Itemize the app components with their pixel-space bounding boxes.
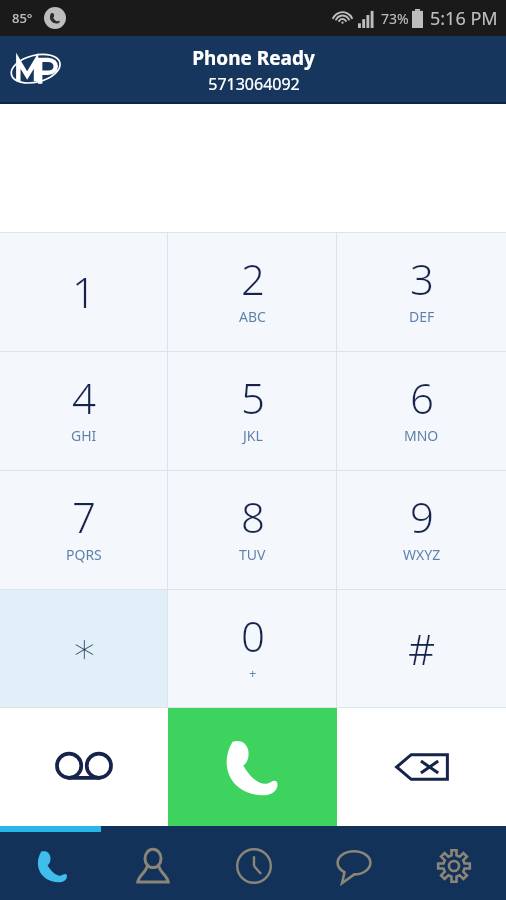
button[interactable]: 9 <box>337 470 506 589</box>
staticText: 3 <box>410 250 434 307</box>
staticText: 6 <box>410 369 434 426</box>
staticText: ∗ <box>71 624 98 673</box>
staticText: JKL <box>243 426 263 445</box>
staticText: + <box>249 664 257 682</box>
staticText: 5713064092 <box>208 73 300 95</box>
staticText: # <box>408 620 436 677</box>
button[interactable]: Settings <box>406 832 501 900</box>
button[interactable]: 4 <box>0 351 168 470</box>
staticText: DEF <box>409 307 435 326</box>
button[interactable]: # <box>337 589 506 708</box>
button[interactable]: Contacts <box>105 832 200 900</box>
staticText: 5:16 PM <box>430 6 498 31</box>
staticText: PQRS <box>66 545 102 564</box>
staticText: 8 <box>241 488 265 545</box>
staticText: MNO <box>404 426 439 445</box>
button[interactable]: Voicemail <box>0 708 168 826</box>
staticText: TUV <box>239 545 266 564</box>
button[interactable]: 3 <box>337 232 506 351</box>
button[interactable]: 2 <box>168 232 337 351</box>
staticText: WXYZ <box>403 545 441 564</box>
staticText: 5 <box>241 369 265 426</box>
button[interactable]: 6 <box>337 351 506 470</box>
button[interactable]: Recents <box>206 832 301 900</box>
staticText: 0 <box>241 607 265 664</box>
staticText: ABC <box>239 307 266 326</box>
button[interactable]: 0 <box>168 589 337 708</box>
button[interactable]: ∗ <box>0 589 168 708</box>
button[interactable]: 8 <box>168 470 337 589</box>
staticText: 85° <box>12 9 33 27</box>
button[interactable]: 5 <box>168 351 337 470</box>
button[interactable]: Call <box>168 708 337 826</box>
button[interactable]: Messages <box>306 832 401 900</box>
staticText: 4 <box>72 369 96 426</box>
button[interactable]: 7 <box>0 470 168 589</box>
staticText: 2 <box>241 250 265 307</box>
button[interactable]: Dialer <box>5 832 100 900</box>
staticText: GHI <box>71 426 97 445</box>
staticText: 73% <box>381 9 409 28</box>
staticText: 7 <box>72 488 96 545</box>
staticText: 9 <box>410 488 434 545</box>
button[interactable]: 1 <box>0 232 168 351</box>
button[interactable]: Backspace <box>337 708 506 826</box>
staticText: Phone Ready <box>192 45 315 71</box>
staticText: 1 <box>72 263 96 320</box>
